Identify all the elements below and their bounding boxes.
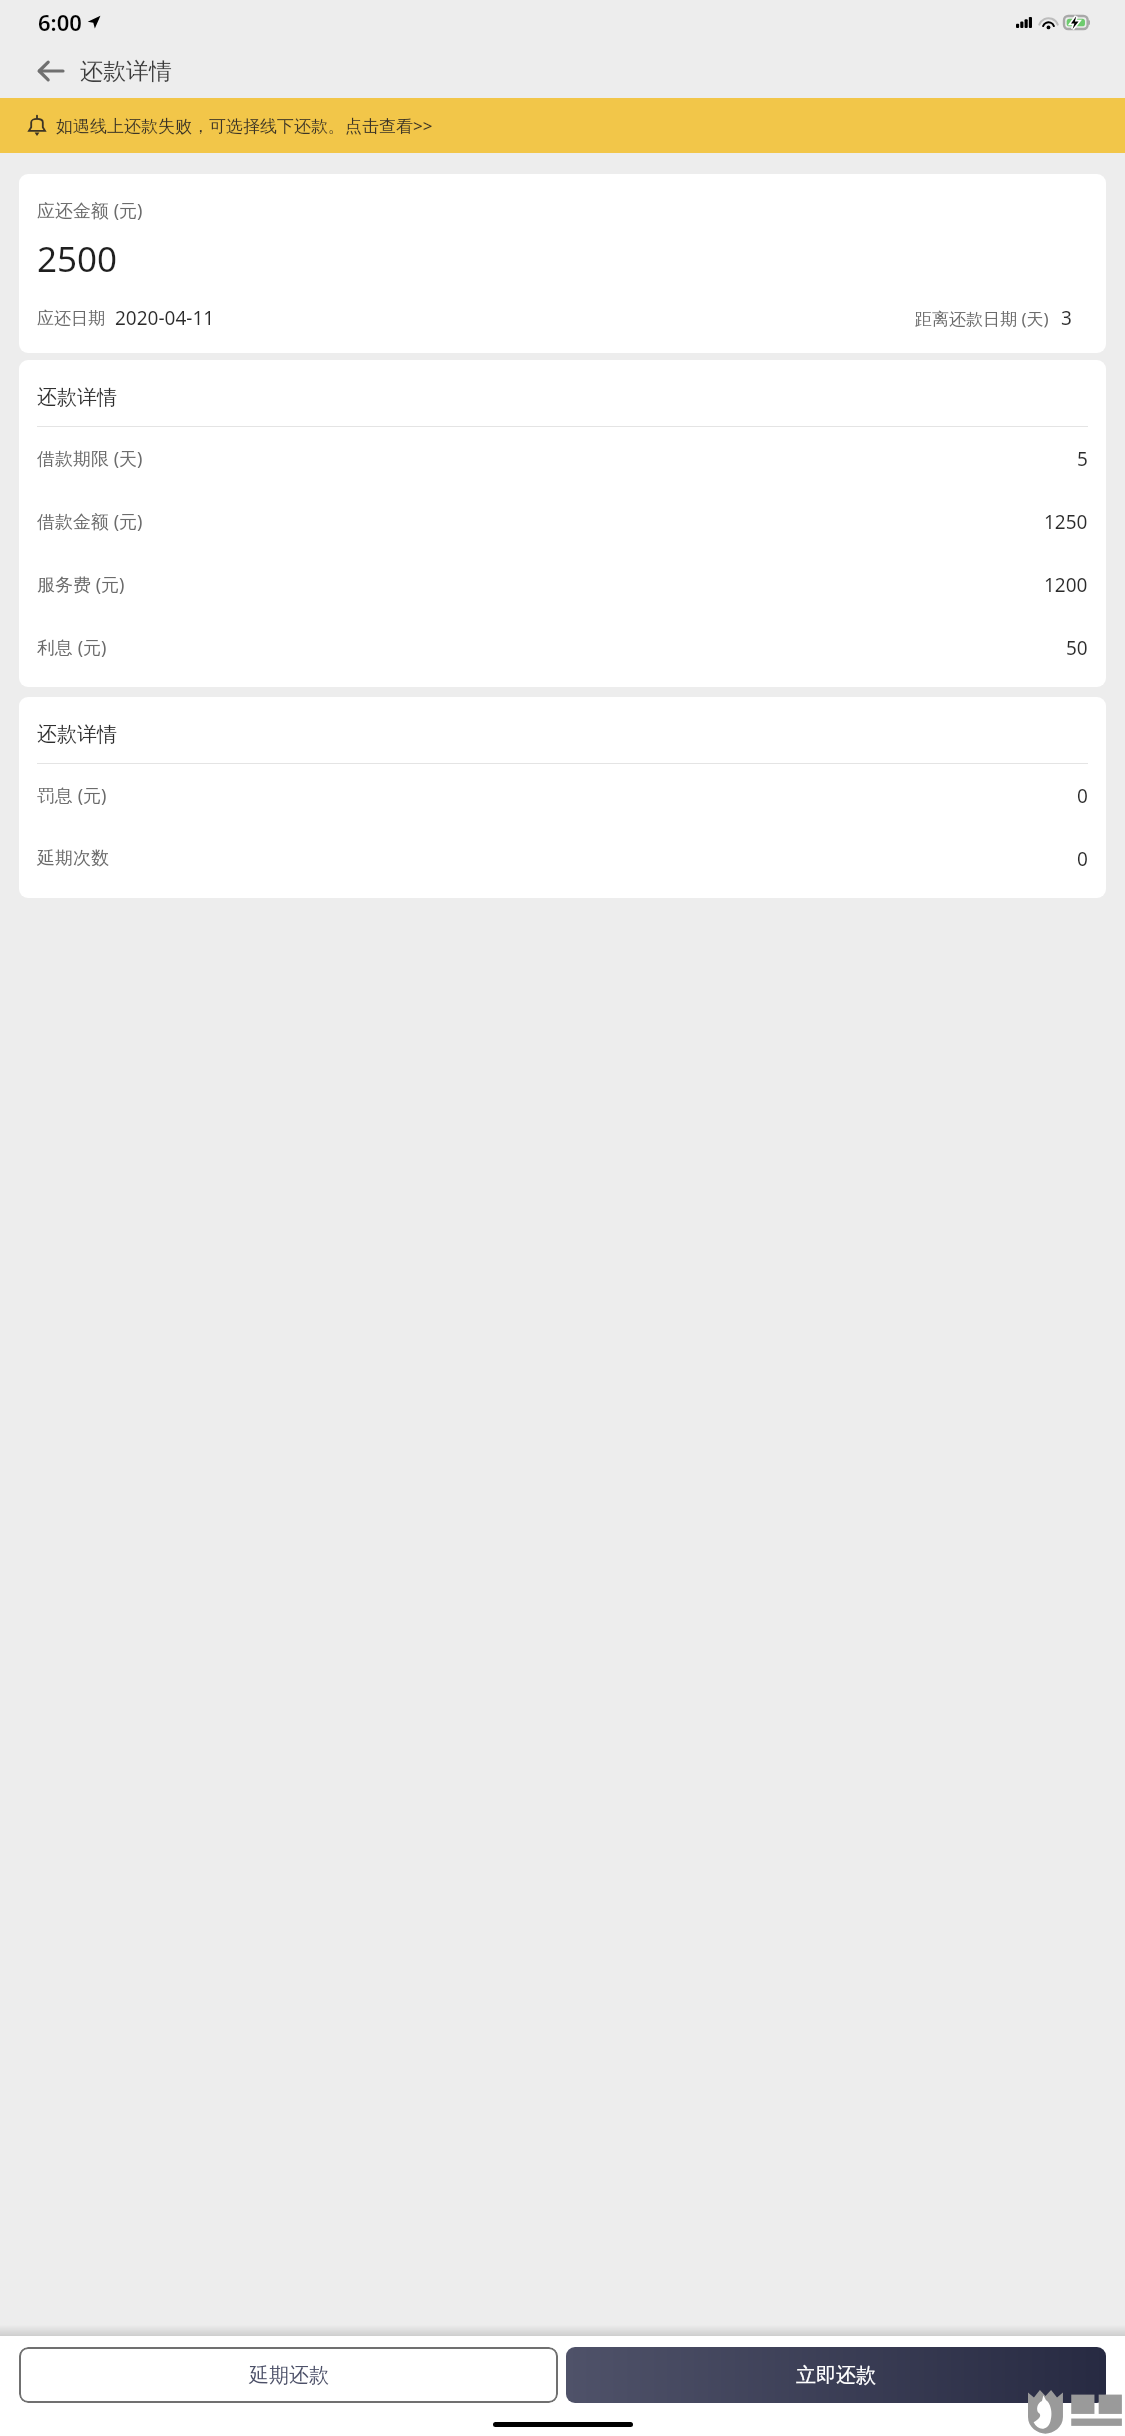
staticText: 0 [1077,846,1088,872]
staticText: 还款详情 [80,57,172,86]
staticText: 还款详情 [37,385,117,410]
staticText: 延期还款 [249,2363,329,2388]
button[interactable]: 罚息 (元) [37,764,1088,827]
button[interactable]: 如遇线上还款失败，可选择线下还款。点击查看>> [0,98,1125,153]
button[interactable]: 立即还款 [566,2347,1106,2403]
button[interactable]: 借款金额 (元) [37,490,1088,553]
staticText: 还款详情 [37,722,117,747]
staticText: 2020-04-11 [115,305,215,331]
staticText: 立即还款 [796,2363,876,2388]
staticText: 借款期限 (天) [37,446,143,471]
staticText: 2500 [37,235,118,283]
button[interactable]: Back [28,49,72,93]
button[interactable]: 服务费 (元) [37,553,1088,616]
staticText: 距离还款日期 (天) [915,307,1049,330]
staticText: 如遇线上还款失败，可选择线下还款。点击查看>> [56,114,433,137]
staticText: 罚息 (元) [37,783,107,808]
button[interactable]: 应还金额 (元) [19,174,1106,353]
staticText: 应还日期 [37,308,105,329]
staticText: 服务费 (元) [37,572,125,597]
staticText: 1250 [1044,509,1088,535]
staticText: 1200 [1044,572,1088,598]
button[interactable]: 延期还款 [19,2347,558,2403]
staticText: 利息 (元) [37,635,107,660]
staticText: 5 [1077,446,1088,472]
staticText: 3 [1061,305,1072,331]
staticText: 50 [1066,635,1088,661]
staticText: 应还金额 (元) [37,198,143,223]
staticText: 6:00 [38,7,82,37]
staticText: 借款金额 (元) [37,509,143,534]
staticText: 延期次数 [37,847,109,870]
button[interactable]: 利息 (元) [37,616,1088,679]
button[interactable]: 延期次数 [37,827,1088,890]
button[interactable]: 借款期限 (天) [37,427,1088,490]
staticText: 0 [1077,783,1088,809]
